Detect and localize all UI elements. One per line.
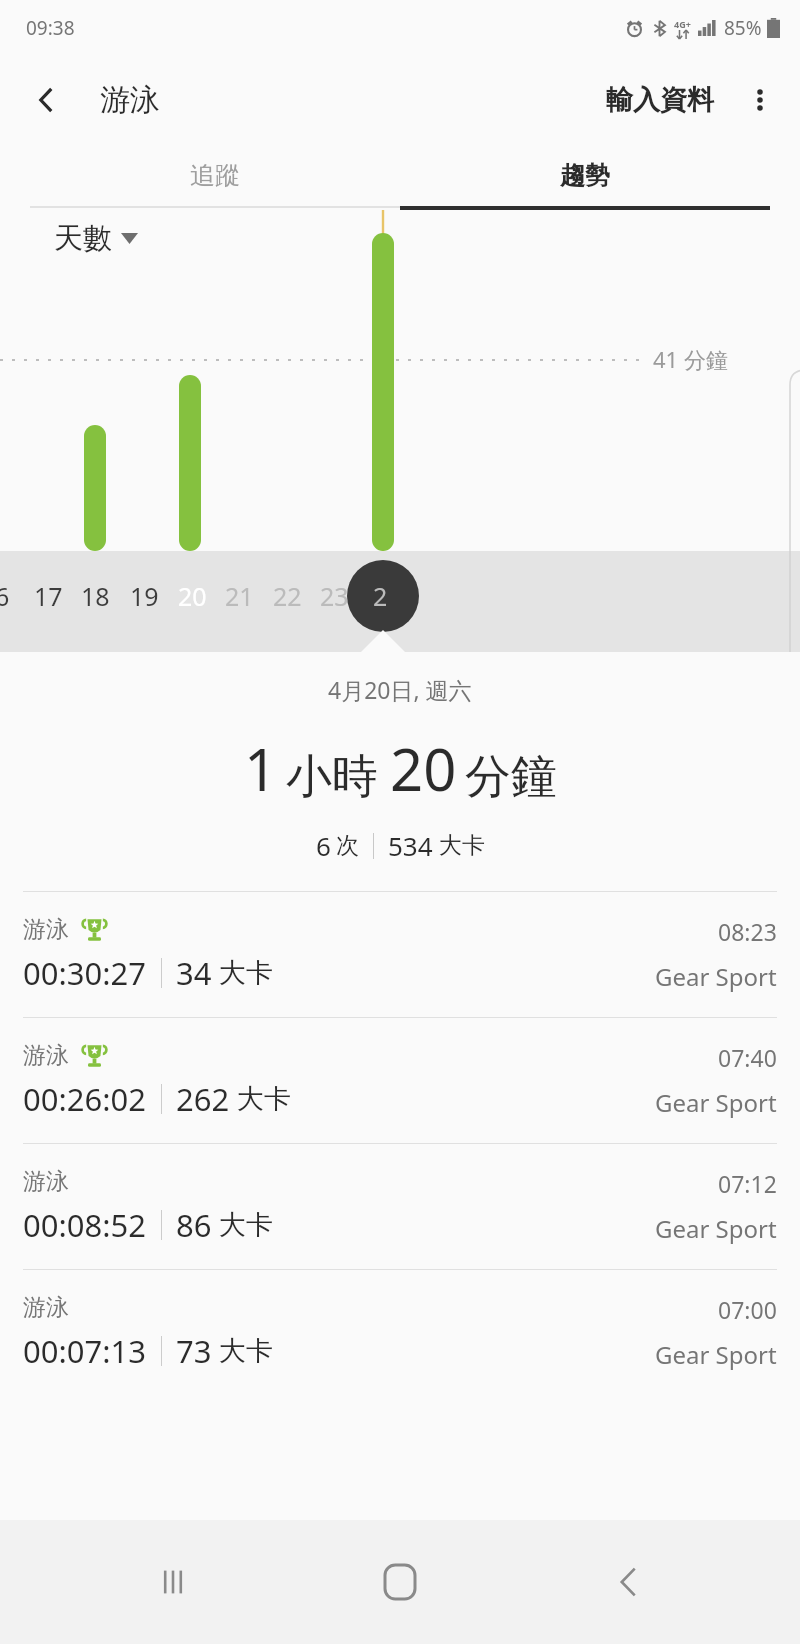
button[interactable]: 趨勢 <box>400 144 770 206</box>
staticText: 大卡 <box>219 1208 273 1242</box>
button[interactable]: 21 <box>209 565 269 627</box>
staticText: 00:30:27 <box>23 952 147 994</box>
staticText: 大卡 <box>439 831 485 860</box>
staticText: 41 分鐘 <box>653 344 728 374</box>
staticText: 73 <box>176 1330 212 1372</box>
staticText: 6 <box>0 579 10 613</box>
button[interactable]: 20 <box>162 565 222 627</box>
staticText: 21 <box>225 579 254 613</box>
staticText: Gear Sport <box>655 1086 777 1119</box>
button[interactable]: 19 <box>114 565 174 627</box>
staticText: 大卡 <box>219 1334 273 1368</box>
staticText: 游泳 <box>23 915 69 944</box>
staticText: 20 <box>390 729 457 808</box>
staticText: 輸入資料 <box>606 83 714 117</box>
staticText: 小時 <box>286 748 378 806</box>
button[interactable]: 游泳 <box>0 1018 800 1143</box>
staticText: 4月20日, 週六 <box>328 674 472 705</box>
staticText: 大卡 <box>237 1082 291 1116</box>
button[interactable]: Back <box>573 1527 683 1637</box>
button[interactable]: 天數 <box>50 216 142 261</box>
staticText: 2 <box>373 579 388 613</box>
button[interactable]: 22 <box>257 565 317 627</box>
staticText: 07:12 <box>718 1168 777 1199</box>
staticText: 4G+ <box>674 18 691 30</box>
staticText: 85% <box>724 15 762 41</box>
button[interactable]: 游泳 <box>0 1144 800 1269</box>
button[interactable]: Home <box>345 1527 455 1637</box>
staticText: 游泳 <box>100 81 160 119</box>
button[interactable]: 2 <box>350 565 410 627</box>
button[interactable]: 18 <box>65 565 125 627</box>
staticText: Gear Sport <box>655 1212 777 1245</box>
staticText: 1 <box>244 729 278 808</box>
button[interactable]: More options <box>734 74 786 126</box>
staticText: Gear Sport <box>655 1338 777 1371</box>
button[interactable]: 游泳 <box>0 1270 800 1395</box>
button[interactable]: 追蹤 <box>30 144 400 206</box>
button[interactable]: 17 <box>18 565 78 627</box>
staticText: 07:00 <box>718 1294 777 1325</box>
staticText: 262 <box>176 1078 230 1120</box>
staticText: 07:40 <box>718 1042 777 1073</box>
staticText: 追蹤 <box>190 160 240 191</box>
staticText: 游泳 <box>23 1167 69 1196</box>
button[interactable]: 6 <box>0 565 32 627</box>
staticText: Gear Sport <box>655 960 777 993</box>
staticText: 00:08:52 <box>23 1204 147 1246</box>
staticText: 6 <box>316 828 331 863</box>
staticText: 大卡 <box>219 956 273 990</box>
staticText: 23 <box>320 579 349 613</box>
staticText: 00:07:13 <box>23 1330 147 1372</box>
button[interactable]: 輸入資料 <box>600 75 720 125</box>
button[interactable]: Back <box>20 74 72 126</box>
button[interactable]: 23 <box>304 565 364 627</box>
staticText: 18 <box>81 579 110 613</box>
staticText: 17 <box>34 579 63 613</box>
staticText: 22 <box>273 579 302 613</box>
staticText: 86 <box>176 1204 212 1246</box>
button[interactable]: 游泳 <box>0 892 800 1017</box>
staticText: 534 <box>388 828 433 863</box>
button[interactable]: Recents <box>118 1527 228 1637</box>
staticText: 游泳 <box>23 1041 69 1070</box>
staticText: 天數 <box>54 220 112 257</box>
staticText: 次 <box>336 831 359 860</box>
staticText: 34 <box>176 952 212 994</box>
staticText: 08:23 <box>718 916 777 947</box>
staticText: 游泳 <box>23 1293 69 1322</box>
staticText: 00:26:02 <box>23 1078 147 1120</box>
staticText: 20 <box>178 579 207 613</box>
staticText: 19 <box>130 579 159 613</box>
staticText: 09:38 <box>26 15 75 41</box>
staticText: 分鐘 <box>465 748 557 806</box>
staticText: 趨勢 <box>560 160 610 191</box>
